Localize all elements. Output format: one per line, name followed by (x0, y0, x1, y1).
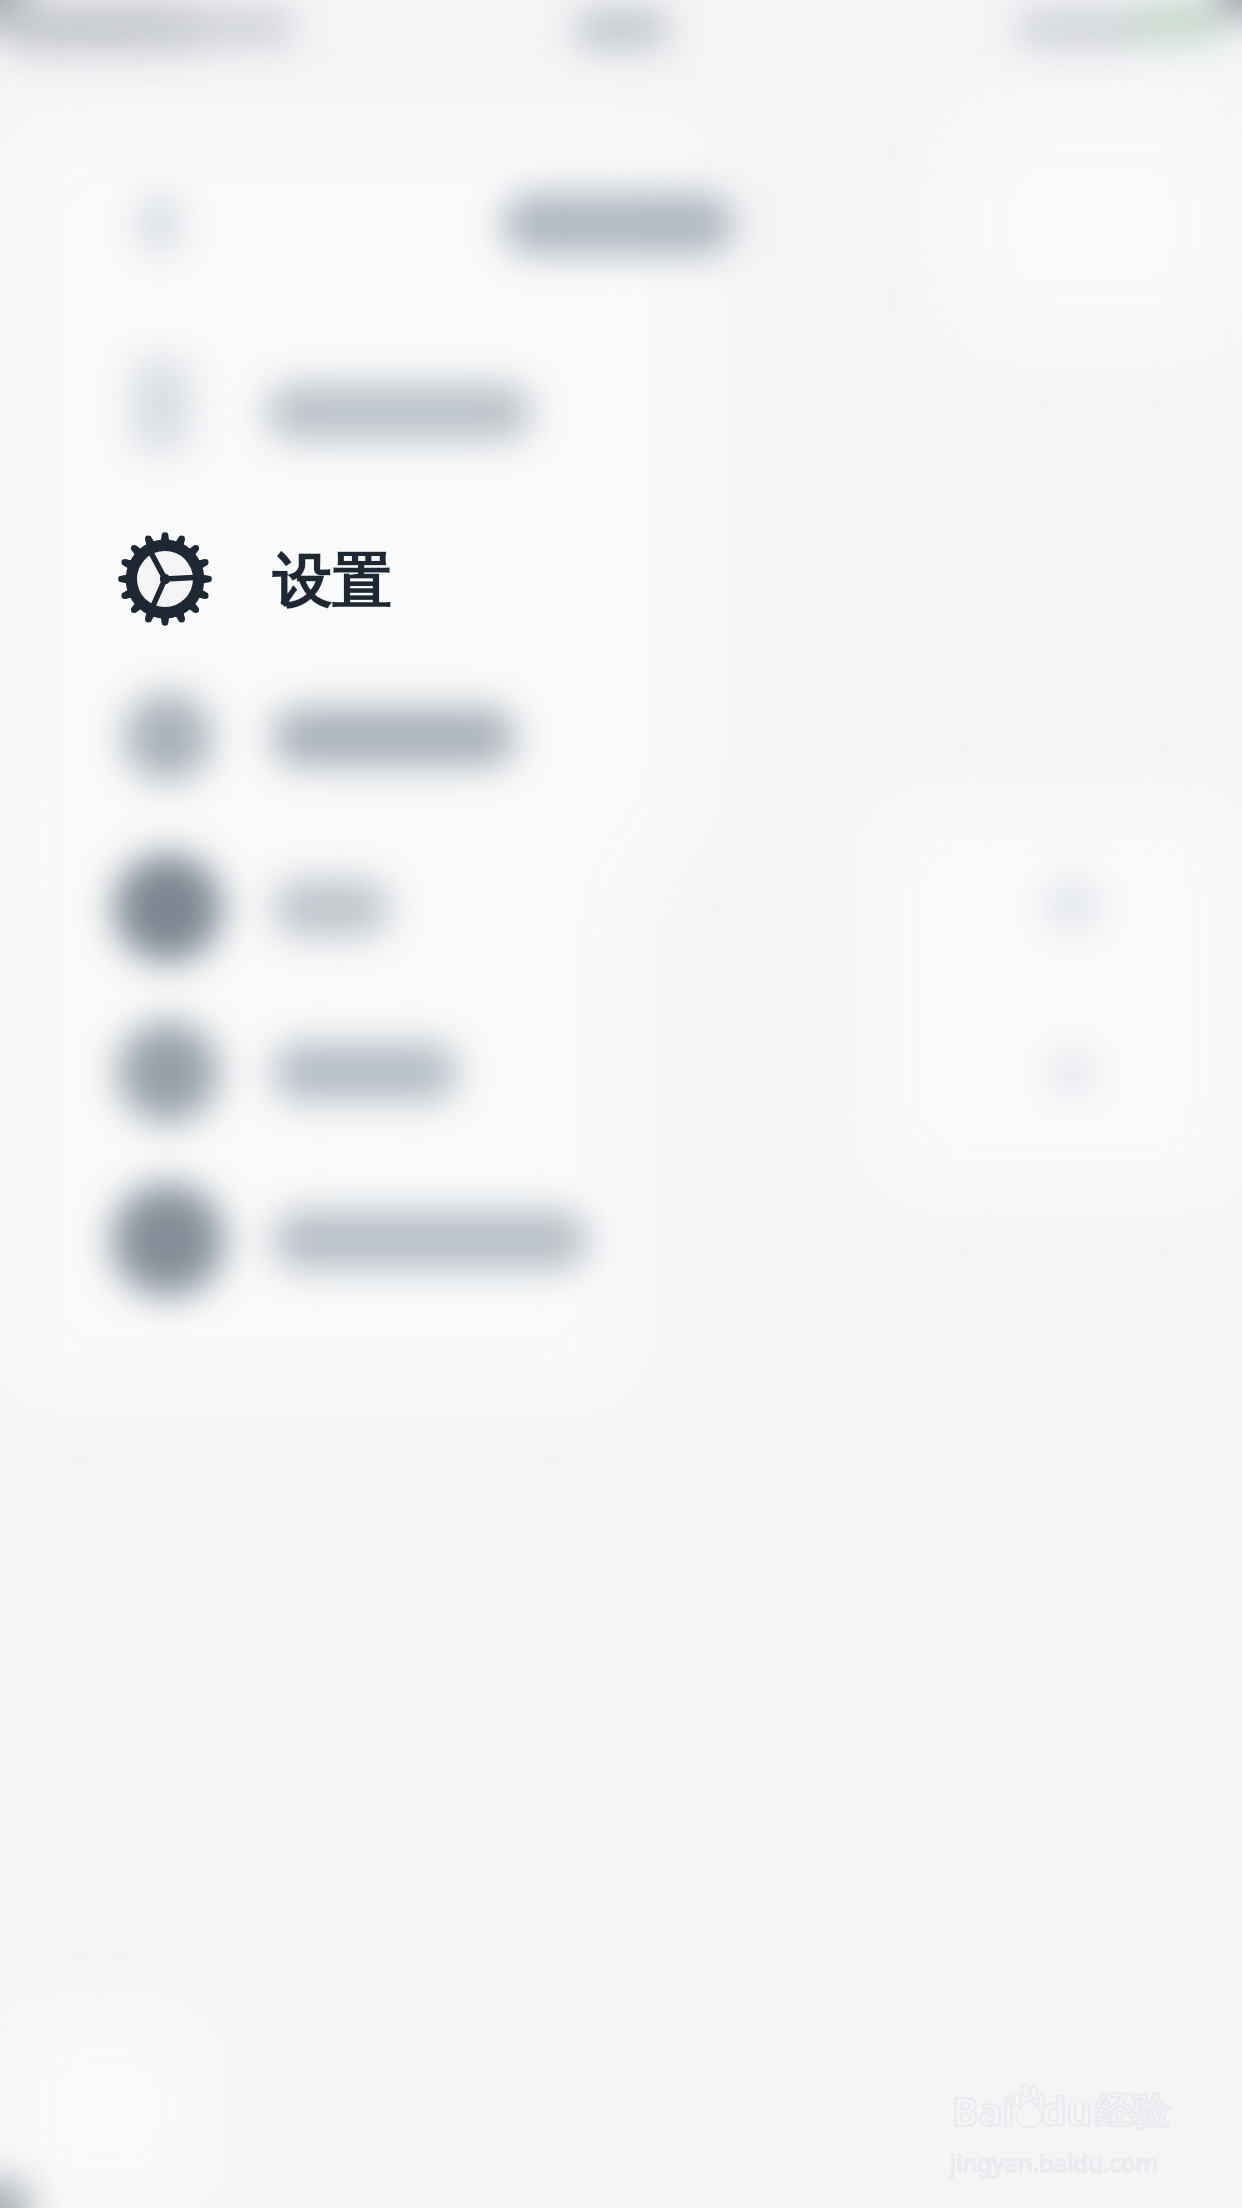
staticText: jingyan.baidu.com (950, 2146, 1158, 2179)
staticText: 设置 (272, 545, 390, 619)
button[interactable]: 设置 (118, 532, 390, 626)
staticText: 经验 (1095, 2088, 1169, 2135)
staticText: du (1041, 2083, 1093, 2137)
staticText: Bai (952, 2083, 1015, 2137)
